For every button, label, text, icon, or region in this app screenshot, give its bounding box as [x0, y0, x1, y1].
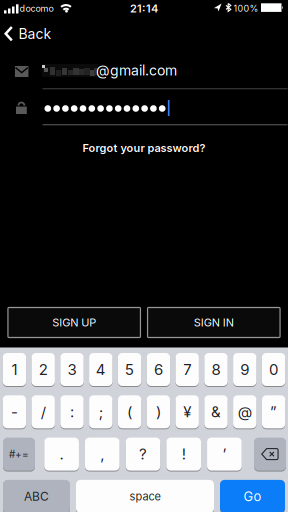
staticText: - [11, 403, 18, 421]
staticText: 6 [154, 361, 163, 378]
button[interactable]: & [204, 395, 228, 429]
button[interactable]: / [31, 395, 55, 429]
staticText: docomo [19, 3, 53, 14]
button[interactable]: 7 [175, 352, 199, 386]
button[interactable]: 9 [233, 352, 256, 386]
button[interactable]: 2 [31, 352, 55, 386]
button[interactable]: ” [262, 395, 285, 429]
button[interactable]: Delete [254, 437, 286, 471]
staticText: 9 [240, 361, 249, 378]
button[interactable]: @ [233, 395, 256, 429]
staticText: Back [18, 26, 51, 42]
button[interactable]: 8 [204, 352, 228, 386]
staticText: ¥ [183, 403, 191, 421]
button[interactable]: SIGN UP [8, 307, 140, 337]
staticText: ) [156, 403, 161, 421]
staticText: ( [127, 403, 132, 421]
button[interactable]: ; [89, 395, 112, 429]
staticText: ! [182, 445, 186, 463]
button[interactable]: 4 [89, 352, 112, 386]
staticText: SIGN UP [52, 316, 96, 329]
button[interactable]: Letters [3, 479, 70, 512]
button[interactable]: . [44, 437, 79, 471]
button[interactable]: 6 [147, 352, 170, 386]
staticText: #+= [9, 448, 29, 460]
button[interactable]: SIGN IN [148, 307, 280, 337]
staticText: space [129, 490, 160, 503]
button[interactable]: ) [147, 395, 170, 429]
staticText: / [41, 403, 46, 421]
button[interactable]: 0 [262, 352, 285, 386]
button[interactable]: - [3, 395, 26, 429]
staticText: Go [243, 489, 261, 504]
staticText: , [100, 445, 104, 463]
staticText: . [60, 445, 64, 463]
staticText: ? [139, 445, 147, 463]
staticText: 0 [269, 361, 278, 378]
button[interactable]: Forgot your password? [82, 141, 205, 154]
staticText: 4 [96, 361, 106, 378]
button[interactable]: space [76, 479, 214, 512]
button[interactable]: Go [220, 479, 285, 512]
button[interactable]: ’ [207, 437, 242, 471]
staticText: 7 [183, 361, 191, 378]
button[interactable]: , [85, 437, 120, 471]
button[interactable]: Back [4, 22, 51, 46]
staticText: @gmail.com [96, 62, 177, 79]
button[interactable]: ? [126, 437, 160, 471]
staticText: 100% [233, 3, 258, 14]
button[interactable]: : [60, 395, 84, 429]
button[interactable]: 1 [3, 352, 26, 386]
staticText: 3 [67, 361, 76, 378]
staticText: & [211, 403, 221, 421]
button[interactable]: ! [166, 437, 201, 471]
button[interactable]: ¥ [175, 395, 199, 429]
staticText: 1 [11, 361, 17, 378]
staticText: Forgot your password? [82, 141, 205, 154]
staticText: ’ [222, 445, 226, 463]
staticText: 5 [125, 361, 134, 378]
button[interactable]: ( [118, 395, 141, 429]
staticText: 8 [211, 361, 220, 378]
staticText: 2 [39, 361, 48, 378]
staticText: SIGN IN [194, 316, 234, 329]
staticText: @ [238, 403, 252, 421]
button[interactable]: 3 [60, 352, 84, 386]
staticText: : [70, 403, 74, 421]
staticText: ABC [24, 489, 49, 503]
staticText: ; [99, 403, 103, 421]
staticText: ” [270, 403, 277, 421]
button[interactable]: 5 [118, 352, 141, 386]
staticText: 21:14 [130, 2, 158, 15]
button[interactable]: More symbols [3, 437, 35, 471]
